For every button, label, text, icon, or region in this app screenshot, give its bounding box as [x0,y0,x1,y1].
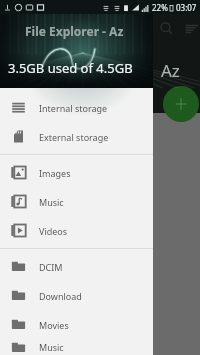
button[interactable]: Images [0,158,153,187]
button[interactable]: Add [163,86,199,122]
staticText: External storage [39,131,109,143]
button[interactable]: Music [0,187,153,216]
button[interactable]: Movies [0,310,153,339]
button[interactable]: Sort [183,20,200,37]
staticText: File Explorer - Az [25,23,124,39]
staticText: Movies [39,319,69,331]
button[interactable]: Search [158,20,175,37]
button[interactable]: External storage [0,122,153,151]
button[interactable]: Internal storage [0,93,153,122]
staticText: Videos [39,225,68,237]
staticText: Music [39,341,64,353]
button[interactable]: DCIM [0,252,153,281]
staticText: 3.5GB used of 4.5GB [8,59,133,77]
button[interactable]: Download [0,281,153,310]
staticText: Internal storage [39,102,108,114]
staticText: DCIM [39,261,63,273]
button[interactable]: Videos [0,216,153,245]
staticText: Music [39,196,64,208]
staticText: 22% [152,2,168,13]
staticText: Images [39,167,71,179]
button[interactable]: Music [0,339,153,355]
staticText: 03:07 [176,2,197,13]
staticText: Az [161,59,180,82]
staticText: Download [39,290,82,302]
button[interactable]: File Explorer - Az [0,0,153,88]
